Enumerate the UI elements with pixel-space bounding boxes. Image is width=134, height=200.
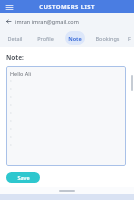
button[interactable]: Detail <box>0 29 30 47</box>
staticText: Note <box>68 35 82 42</box>
button[interactable]: F <box>125 29 134 47</box>
button[interactable]: Open navigation menu <box>4 2 14 12</box>
staticText: Profile <box>37 35 54 42</box>
button[interactable]: Hello Ali <box>6 66 126 166</box>
staticText: CUSTOMERS LIST <box>39 3 95 11</box>
button[interactable]: Bookings <box>90 29 125 47</box>
button[interactable]: Save <box>6 172 40 183</box>
other: Back <box>4 17 12 25</box>
button[interactable]: Back <box>4 17 79 25</box>
staticText: F <box>128 35 131 42</box>
button[interactable]: Note <box>60 29 90 47</box>
staticText: Save <box>17 174 30 181</box>
staticText: imran imran@gmail.com <box>15 18 79 25</box>
staticText: Hello Ali <box>10 70 32 77</box>
staticText: Bookings <box>95 35 120 42</box>
staticText: Detail <box>7 35 23 42</box>
button[interactable]: Profile <box>30 29 60 47</box>
staticText: Note: <box>6 53 24 62</box>
